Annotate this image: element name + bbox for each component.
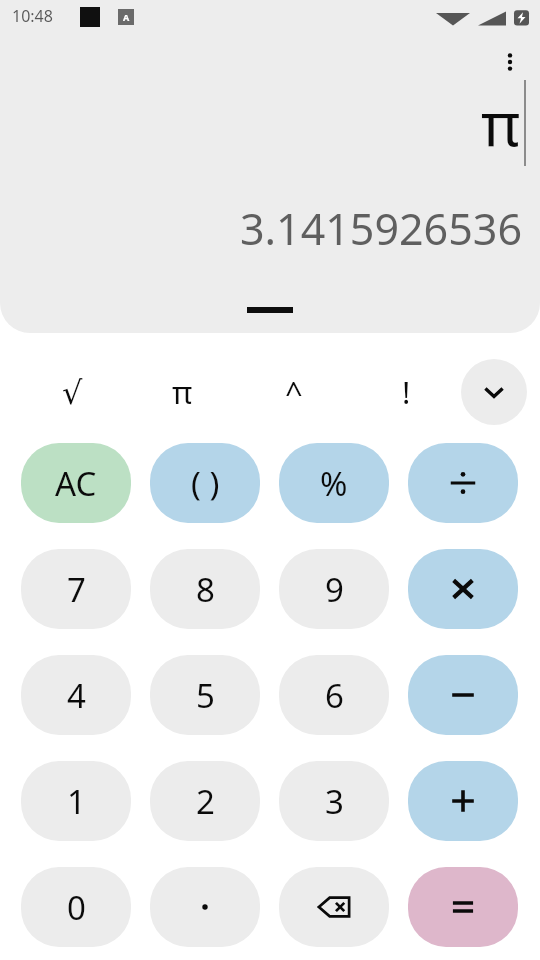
staticText: 7 <box>67 567 86 612</box>
button[interactable]: Factorial <box>380 366 432 418</box>
staticText: ( ) <box>191 461 220 506</box>
staticText: π <box>481 82 521 164</box>
button[interactable]: Multiply <box>408 549 518 629</box>
staticText: 8 <box>196 567 215 612</box>
button[interactable]: 6 <box>279 655 389 735</box>
staticText: 0 <box>67 885 86 930</box>
button[interactable]: Square root <box>46 366 98 418</box>
button[interactable]: Add <box>408 761 518 841</box>
button[interactable]: Equals <box>408 867 518 947</box>
button[interactable]: Collapse keypad <box>461 359 527 425</box>
staticText: 3 <box>325 779 344 824</box>
button[interactable]: 7 <box>21 549 131 629</box>
staticText: √ <box>62 374 83 411</box>
button[interactable]: 1 <box>21 761 131 841</box>
staticText: 1 <box>67 779 86 824</box>
button[interactable]: 8 <box>150 549 260 629</box>
button[interactable]: 9 <box>279 549 389 629</box>
button[interactable]: More options <box>489 41 531 83</box>
button[interactable]: Subtract <box>408 655 518 735</box>
button[interactable]: 5 <box>150 655 260 735</box>
button[interactable]: 3 <box>279 761 389 841</box>
staticText: 5 <box>196 673 215 718</box>
staticText: 10:48 <box>12 5 53 27</box>
staticText: 3.1415926536 <box>239 199 522 258</box>
button[interactable]: Power <box>268 366 320 418</box>
staticText: % <box>320 461 348 506</box>
button[interactable]: 0 <box>21 867 131 947</box>
staticText: 6 <box>325 673 344 718</box>
staticText: 2 <box>196 779 215 824</box>
staticText: 9 <box>325 567 344 612</box>
button[interactable]: Divide <box>408 443 518 523</box>
button[interactable]: ( ) <box>150 443 260 523</box>
staticText: ^ <box>285 371 303 413</box>
staticText: AC <box>55 461 97 506</box>
button[interactable]: 2 <box>150 761 260 841</box>
button[interactable]: Decimal point <box>150 867 260 947</box>
staticText: A <box>123 11 130 23</box>
staticText: π <box>172 371 193 413</box>
button[interactable]: AC <box>21 443 131 523</box>
button[interactable]: Backspace <box>279 867 389 947</box>
staticText: ! <box>402 371 411 413</box>
button[interactable]: Pi <box>156 366 208 418</box>
button[interactable]: 4 <box>21 655 131 735</box>
staticText: 4 <box>67 673 86 718</box>
button[interactable]: % <box>279 443 389 523</box>
